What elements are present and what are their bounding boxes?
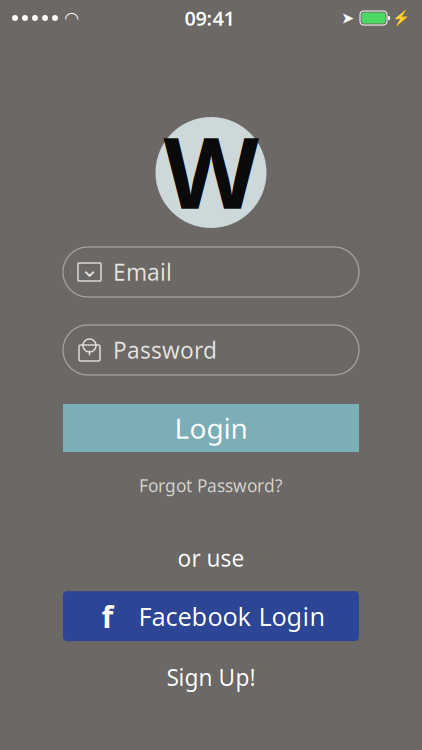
- staticText: ◠: [65, 8, 78, 28]
- staticText: ⌄: [80, 256, 99, 282]
- staticText: f: [101, 596, 113, 636]
- button[interactable]: Password: [63, 325, 359, 375]
- button[interactable]: Forgot Password?: [129, 470, 293, 501]
- staticText: or use: [177, 543, 244, 573]
- staticText: ➤: [341, 9, 354, 27]
- staticText: Facebook Login: [138, 599, 325, 633]
- staticText: ⚡: [392, 10, 410, 26]
- button[interactable]: Login: [63, 404, 359, 452]
- button[interactable]: Sign Up!: [156, 658, 265, 696]
- staticText: Sign Up!: [166, 662, 255, 692]
- button[interactable]: f: [63, 591, 359, 641]
- staticText: Login: [174, 409, 247, 447]
- staticText: Password: [113, 335, 217, 365]
- staticText: Email: [113, 257, 172, 287]
- button[interactable]: ⌄: [63, 247, 359, 297]
- staticText: Forgot Password?: [139, 474, 283, 497]
- staticText: W: [163, 105, 258, 236]
- staticText: 09:41: [184, 5, 234, 31]
